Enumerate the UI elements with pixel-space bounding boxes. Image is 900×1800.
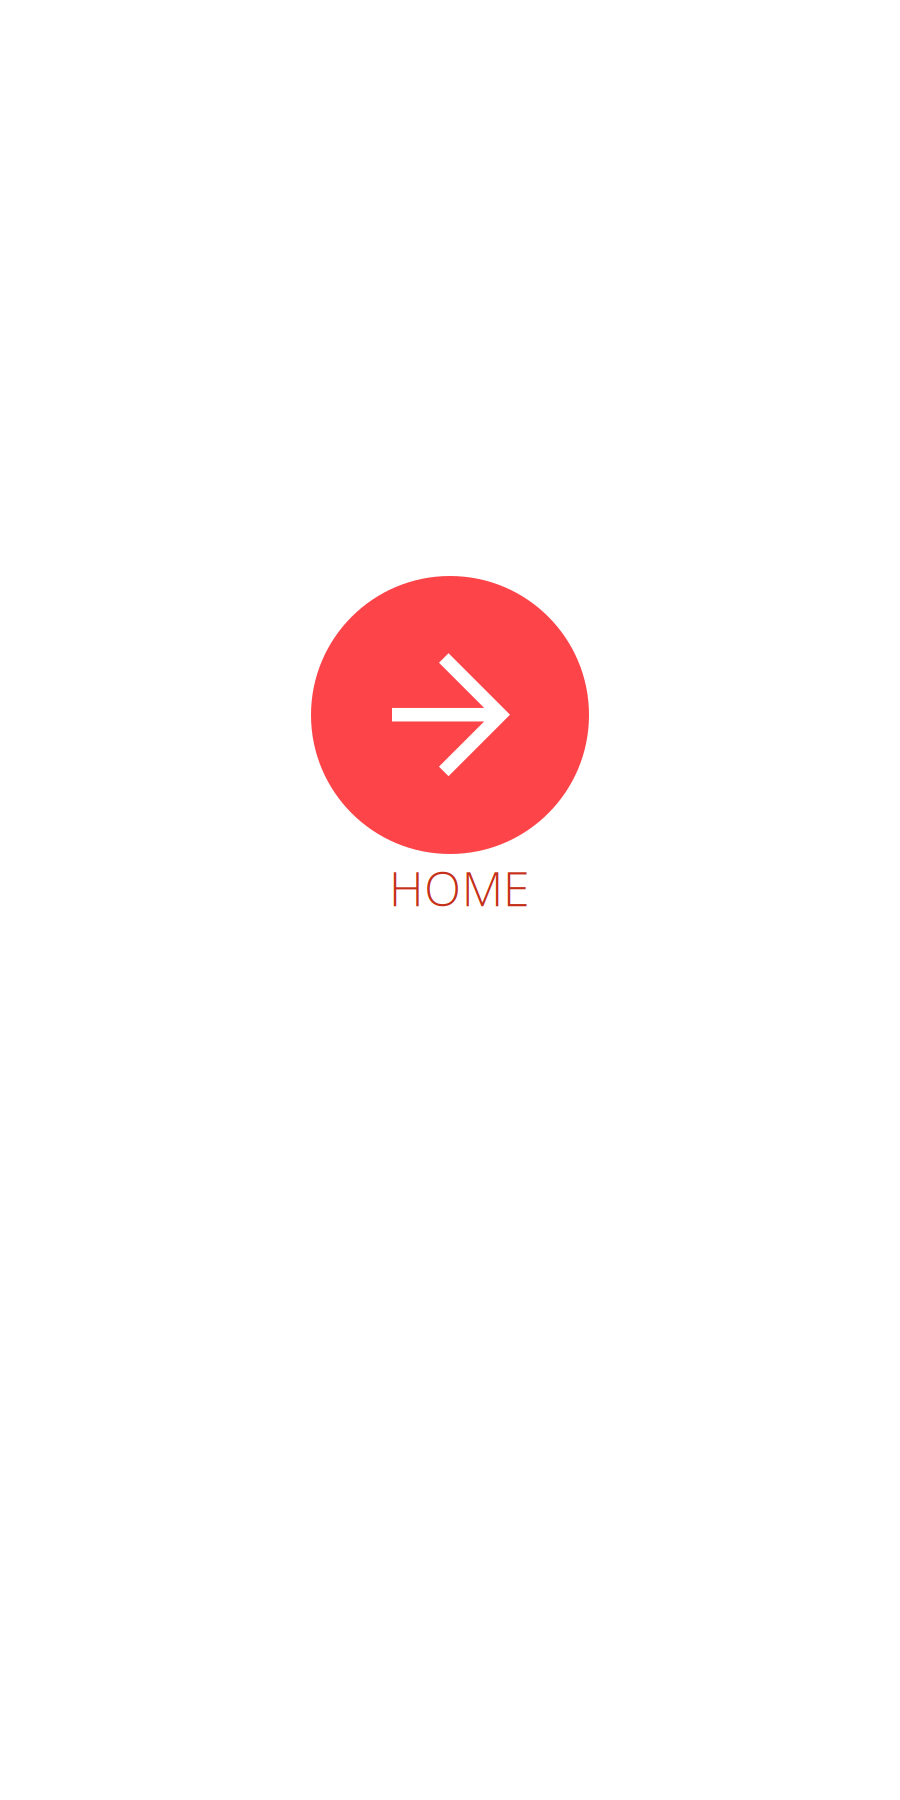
staticText: HOME xyxy=(389,855,529,920)
button[interactable]: Home xyxy=(311,576,589,920)
